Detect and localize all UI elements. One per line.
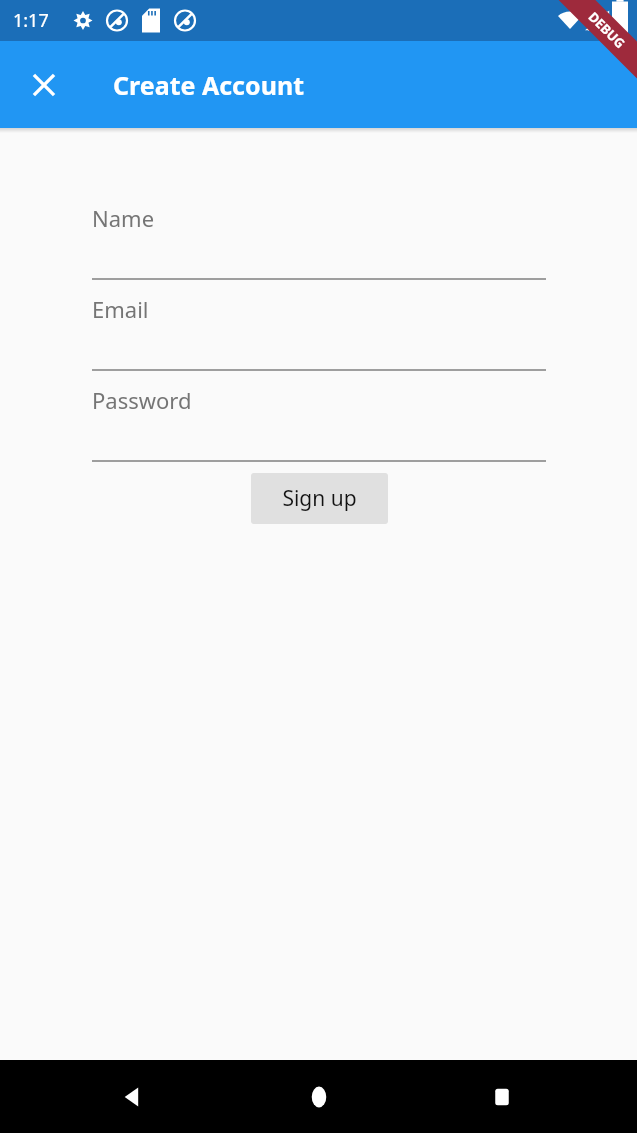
button[interactable]: Sign up [251,473,388,524]
button[interactable]: Name [92,189,546,280]
button[interactable]: Password [92,371,546,462]
staticText: Sign up [282,484,357,513]
staticText: Create Account [113,68,304,102]
button[interactable]: Back [101,1065,165,1129]
button[interactable]: Close [20,61,68,109]
staticText: 1:17 [13,8,49,33]
staticText: Email [92,294,149,324]
staticText: Name [92,203,155,233]
button[interactable]: Recent apps [470,1065,534,1129]
staticText: Password [92,385,192,415]
button[interactable]: Email [92,280,546,371]
button[interactable]: Home [287,1065,351,1129]
